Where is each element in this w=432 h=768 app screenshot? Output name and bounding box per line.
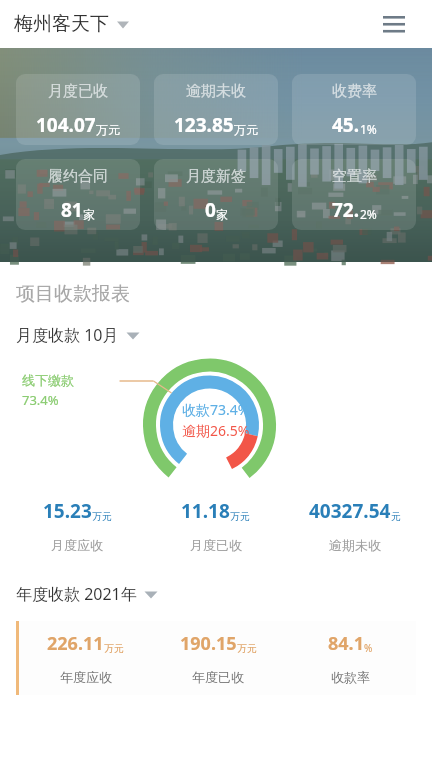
staticText: 月度应收: [51, 537, 103, 553]
staticText: 万元: [104, 642, 124, 655]
staticText: 年度应收: [60, 669, 112, 685]
staticText: 190.15: [180, 631, 237, 656]
staticText: 月度收款 10月: [16, 324, 119, 346]
button[interactable]: 15.23: [8, 498, 146, 553]
staticText: 年度已收: [192, 669, 244, 685]
staticText: 45.: [332, 112, 360, 138]
staticText: 万元: [96, 122, 120, 137]
staticText: 月度已收: [48, 82, 108, 101]
button[interactable]: 月度已收: [16, 74, 140, 145]
button[interactable]: 逾期未收: [154, 74, 278, 145]
button[interactable]: 11.18: [146, 498, 285, 553]
staticText: 收款率: [331, 669, 370, 685]
staticText: 月度已收: [190, 537, 242, 553]
staticText: 40327.54: [309, 498, 391, 524]
staticText: 元: [391, 510, 401, 523]
staticText: 81: [61, 197, 83, 223]
staticText: 家: [216, 207, 228, 222]
staticText: 逾期未收: [186, 82, 246, 101]
staticText: 年度收款 2021年: [16, 583, 137, 605]
button[interactable]: 226.11: [16, 621, 416, 695]
staticText: 逾期未收: [329, 537, 381, 553]
staticText: 万元: [237, 642, 257, 655]
button[interactable]: 月度新签: [154, 159, 278, 230]
button[interactable]: 空置率: [292, 159, 416, 230]
staticText: %: [364, 641, 373, 655]
staticText: 万元: [92, 510, 112, 523]
button[interactable]: 年度收款 2021年: [16, 583, 158, 605]
staticText: 线下缴款: [22, 372, 74, 388]
button[interactable]: 月度收款 10月: [16, 324, 140, 346]
staticText: 万元: [230, 510, 250, 523]
staticText: 73.4%: [22, 391, 59, 409]
button[interactable]: 收费率: [292, 74, 416, 145]
staticText: 梅州客天下: [14, 12, 109, 36]
staticText: 项目收款报表: [16, 282, 130, 306]
staticText: 15.23: [43, 498, 92, 524]
staticText: 收费率: [332, 82, 377, 101]
button[interactable]: Menu: [378, 8, 410, 40]
staticText: 收款73.4%: [182, 400, 250, 419]
staticText: 123.85: [174, 112, 234, 138]
staticText: 家: [83, 207, 95, 222]
staticText: 11.18: [181, 498, 230, 524]
staticText: 万元: [234, 122, 258, 137]
staticText: 72.: [332, 197, 360, 223]
button[interactable]: 梅州客天下: [14, 12, 130, 36]
button[interactable]: 履约合同: [16, 159, 140, 230]
staticText: 月度新签: [186, 167, 246, 186]
staticText: 226.11: [47, 631, 104, 656]
staticText: 1%: [360, 121, 377, 137]
staticText: 逾期26.5%: [182, 421, 250, 440]
staticText: 2%: [360, 206, 377, 222]
staticText: 84.1: [328, 631, 364, 656]
staticText: 0: [205, 197, 216, 223]
button[interactable]: 40327.54: [285, 498, 424, 553]
staticText: 履约合同: [48, 167, 108, 186]
staticText: 104.07: [36, 112, 96, 138]
staticText: 空置率: [332, 167, 377, 186]
